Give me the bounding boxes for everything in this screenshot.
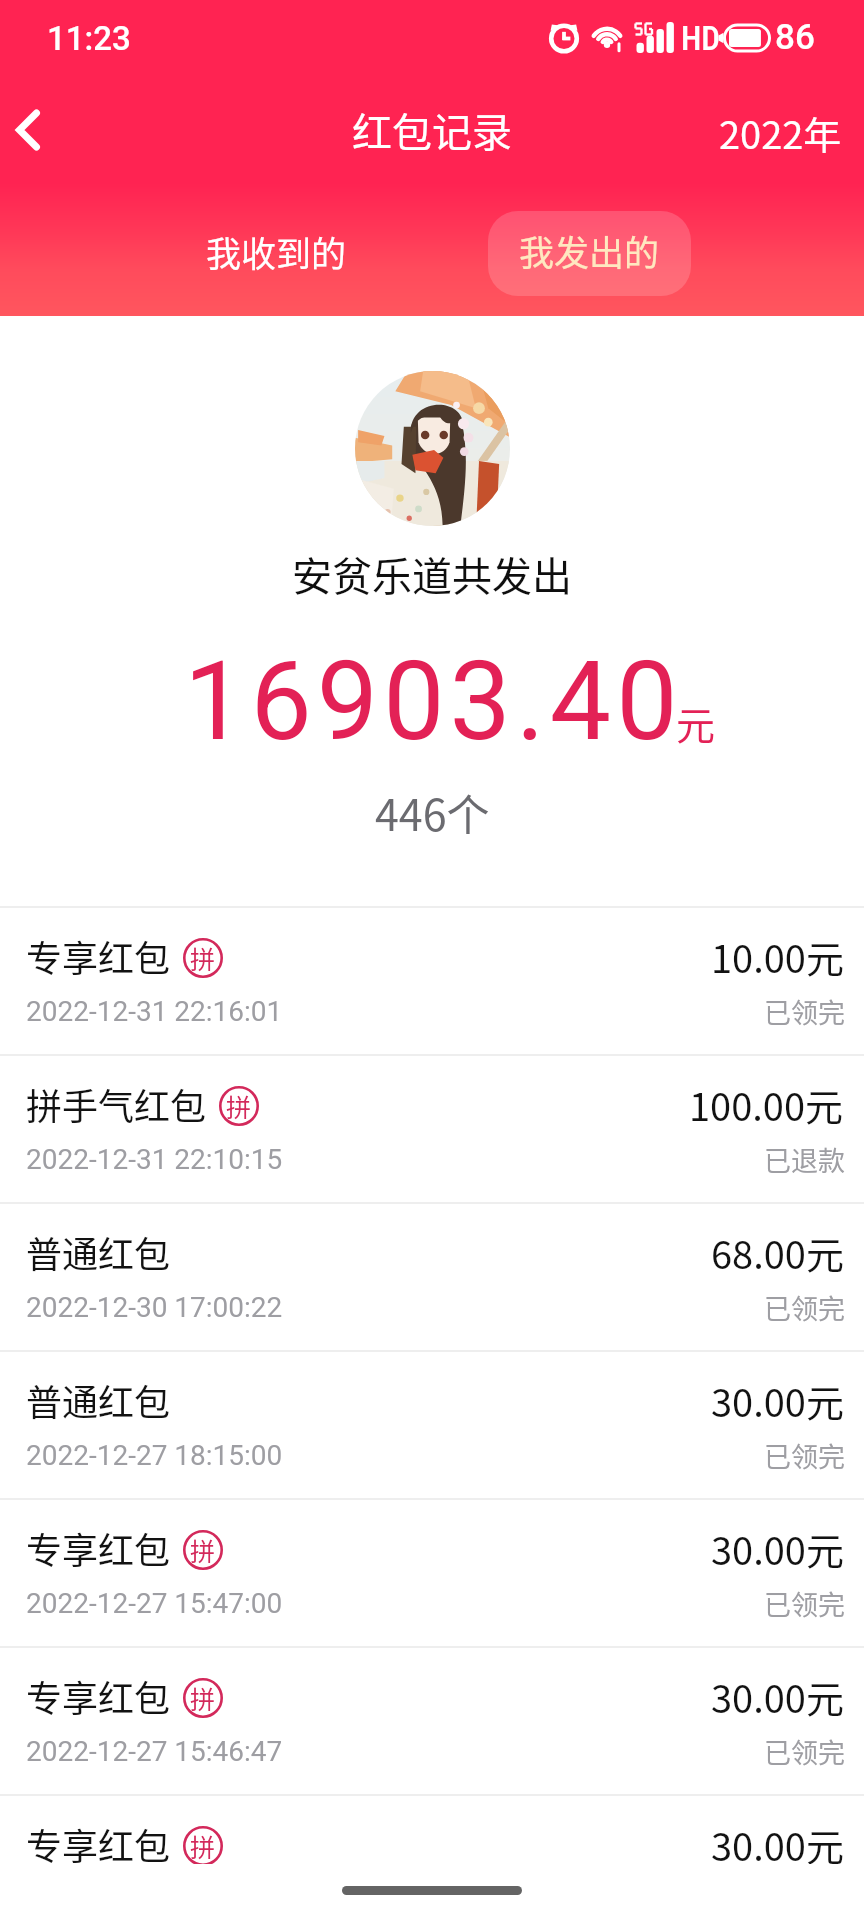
staticText: 安贫乐道共发出	[292, 545, 572, 603]
staticText: 专享红包	[26, 1522, 171, 1574]
staticText: 普通红包	[26, 1374, 171, 1426]
staticText: 已退款	[764, 1140, 845, 1179]
button[interactable]: 拼手气红包	[0, 1056, 864, 1202]
staticText: 2022-12-27 15:46:47	[26, 1735, 283, 1768]
staticText: 拼手气红包	[26, 1078, 207, 1130]
staticText: 专享红包	[26, 930, 171, 982]
staticText: 红包记录	[352, 101, 512, 159]
staticText: 已领完	[764, 1732, 845, 1771]
staticText: 普通红包	[26, 1226, 171, 1278]
staticText: 已领完	[764, 1288, 845, 1327]
staticText: 2022-12-27 15:47:00	[26, 1587, 283, 1620]
staticText: 专享红包	[26, 1818, 171, 1870]
button[interactable]: 普通红包	[0, 1204, 864, 1350]
button[interactable]: Avatar	[355, 371, 510, 526]
staticText: 我发出的	[519, 225, 660, 276]
staticText: 专享红包	[26, 1670, 171, 1722]
staticText: 已领完	[764, 1584, 845, 1623]
staticText: 446个	[375, 781, 490, 843]
staticText: 元	[676, 695, 716, 751]
staticText: 2022-12-27 18:15:00	[26, 1439, 283, 1472]
staticText: 拼	[226, 1088, 252, 1124]
staticText: 11:23	[47, 19, 131, 58]
button[interactable]: 我发出的	[488, 211, 691, 296]
staticText: 拼	[190, 1532, 216, 1568]
staticText: 已领完	[764, 1436, 845, 1475]
staticText: 已领完	[764, 992, 845, 1031]
staticText: 16903.40	[184, 638, 683, 766]
staticText: 我收到的	[206, 226, 347, 277]
staticText: HD	[681, 19, 721, 58]
staticText: 拼	[190, 1680, 216, 1716]
staticText: 拼	[190, 1828, 216, 1864]
button[interactable]: 2022年	[697, 95, 864, 165]
staticText: 拼	[190, 940, 216, 976]
button[interactable]: 我收到的	[190, 208, 362, 294]
staticText: 2022年	[719, 105, 842, 155]
staticText: 2022-12-31 22:10:15	[26, 1143, 283, 1176]
button[interactable]: Back	[0, 95, 70, 165]
staticText: 2022-12-31 22:16:01	[26, 995, 283, 1028]
staticText: 30.00元	[711, 1669, 844, 1724]
button[interactable]: 专享红包	[0, 908, 864, 1054]
staticText: 10.00元	[711, 929, 844, 984]
staticText: 30.00元	[711, 1817, 844, 1872]
staticText: 2022-12-30 17:00:22	[26, 1291, 283, 1324]
button[interactable]: 专享红包	[0, 1796, 864, 1920]
staticText: 30.00元	[711, 1521, 844, 1576]
button[interactable]: 专享红包	[0, 1648, 864, 1794]
button[interactable]: 普通红包	[0, 1352, 864, 1498]
staticText: 68.00元	[711, 1225, 844, 1280]
staticText: 100.00元	[689, 1077, 844, 1132]
staticText: 86	[775, 17, 815, 58]
button[interactable]: 专享红包	[0, 1500, 864, 1646]
staticText: 30.00元	[711, 1373, 844, 1428]
